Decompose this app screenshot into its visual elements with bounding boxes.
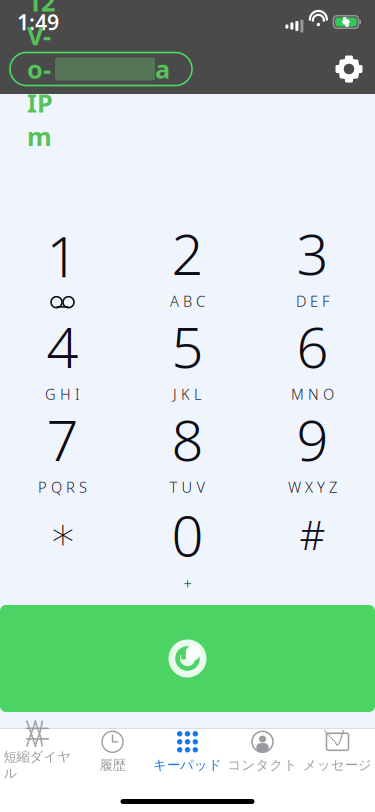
staticText: T U V — [169, 477, 205, 497]
staticText: 7 — [46, 402, 78, 476]
button[interactable]: メッセージ — [300, 728, 375, 777]
button[interactable]: 2 — [125, 219, 250, 312]
staticText: 8 — [171, 402, 203, 476]
staticText: 4 — [46, 309, 78, 383]
staticText: W X Y Z — [288, 477, 337, 497]
button[interactable]: 履歴 — [75, 728, 150, 777]
staticText: 0 — [171, 498, 203, 572]
button[interactable]: Call — [0, 605, 375, 712]
staticText: キーパッド — [153, 757, 222, 773]
staticText: ∗ — [48, 508, 76, 559]
button[interactable]: # — [250, 498, 375, 591]
button[interactable]: 9 — [250, 405, 375, 498]
button[interactable]: Settings — [323, 46, 375, 92]
staticText: P Q R S — [38, 477, 87, 497]
staticText: G H I — [45, 384, 80, 404]
staticText: 1:49 — [17, 8, 59, 36]
button[interactable]: 6 — [250, 312, 375, 405]
staticText: + — [183, 574, 191, 593]
staticText: A B C — [170, 291, 205, 311]
staticText: 3 — [296, 216, 328, 290]
staticText: 履歴 — [99, 757, 125, 773]
button[interactable]: 12VoIP m — [10, 52, 192, 85]
button[interactable]: 7 — [0, 405, 125, 498]
staticText: J K L — [173, 384, 202, 404]
staticText: 短縮ダイヤル — [3, 749, 71, 781]
staticText: 1 — [46, 218, 78, 293]
button[interactable]: 1 — [0, 219, 125, 312]
staticText: a — [155, 52, 170, 86]
staticText: 5 — [171, 309, 203, 383]
staticText: D E F — [296, 291, 329, 311]
button[interactable]: 8 — [125, 405, 250, 498]
staticText: 2 — [171, 216, 203, 290]
button[interactable]: コンタクト — [225, 728, 300, 777]
button[interactable]: キーパッド — [150, 728, 225, 777]
staticText: コンタクト — [227, 757, 297, 773]
button[interactable]: ∗ — [0, 498, 125, 591]
button[interactable]: 5 — [125, 312, 250, 405]
button[interactable]: 4 — [0, 312, 125, 405]
staticText: 6 — [296, 309, 328, 383]
button[interactable]: 3 — [250, 219, 375, 312]
staticText: # — [299, 508, 325, 561]
staticText: 9 — [296, 402, 328, 476]
staticText: 12VoIP m — [27, 0, 55, 153]
staticText: M N O — [291, 384, 334, 404]
button[interactable]: 0 — [125, 498, 250, 591]
staticText: メッセージ — [303, 757, 372, 773]
button[interactable]: 短縮ダイヤル — [0, 728, 75, 777]
